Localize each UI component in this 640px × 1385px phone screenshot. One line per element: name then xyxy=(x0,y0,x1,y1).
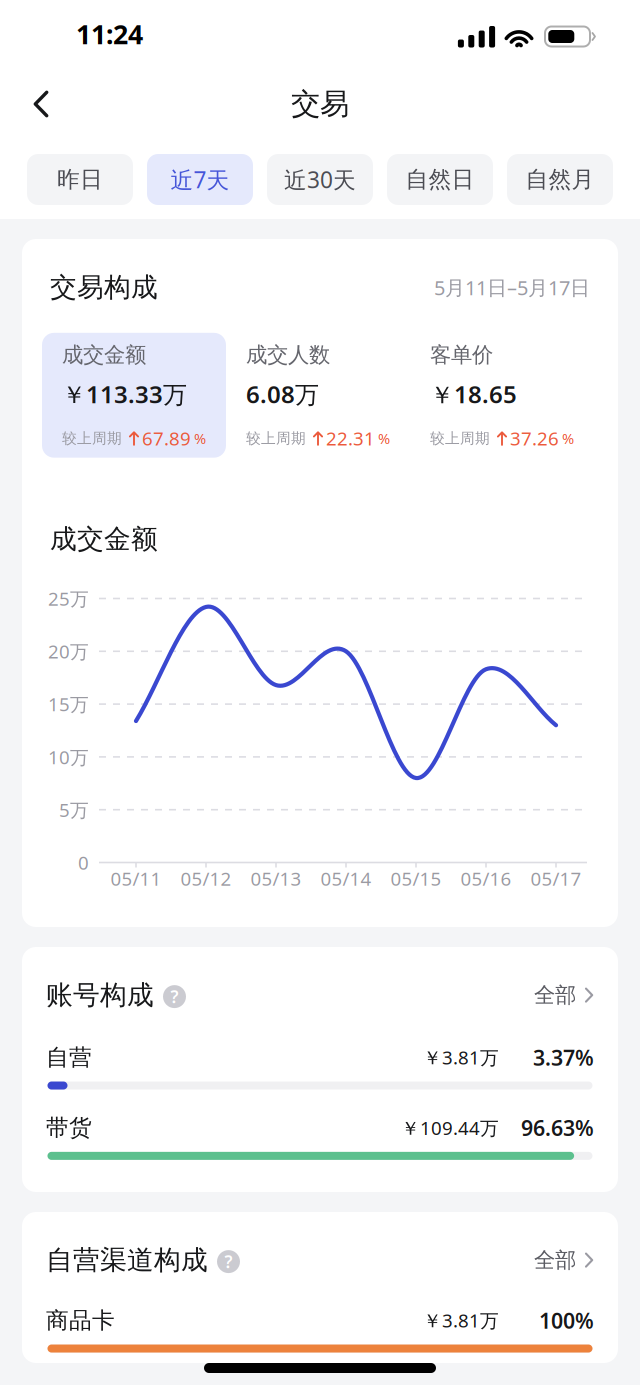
button[interactable]: 昨日 xyxy=(27,154,133,205)
button[interactable]: 返回 xyxy=(12,76,70,132)
staticText: ￥3.81万 xyxy=(423,1045,499,1070)
staticText: 20万 xyxy=(48,639,89,664)
button[interactable]: 全部 xyxy=(534,976,594,1014)
staticText: 自营渠道构成 xyxy=(46,1244,208,1276)
staticText: % xyxy=(562,429,574,448)
staticText: 05/13 xyxy=(250,866,301,891)
staticText: 近30天 xyxy=(284,164,356,194)
staticText: 37.26 xyxy=(510,426,559,451)
staticText: 交易 xyxy=(291,86,349,122)
button[interactable]: 近30天 xyxy=(267,154,373,205)
staticText: 05/14 xyxy=(320,866,371,891)
staticText: 05/12 xyxy=(180,866,231,891)
staticText: 67.89 xyxy=(142,426,191,451)
staticText: 自然日 xyxy=(405,166,474,193)
staticText: ￥18.65 xyxy=(430,378,517,410)
staticText: 10万 xyxy=(48,744,89,769)
staticText: 6.08万 xyxy=(246,378,319,410)
button[interactable]: 全部 xyxy=(534,1241,594,1279)
staticText: 5万 xyxy=(59,797,89,822)
staticText: 自然月 xyxy=(525,166,594,193)
staticText: 较上周期 xyxy=(246,429,306,447)
button[interactable]: 近7天 xyxy=(147,154,253,205)
staticText: ￥3.81万 xyxy=(423,1308,499,1333)
staticText: 较上周期 xyxy=(430,429,490,447)
staticText: % xyxy=(194,428,206,448)
staticText: 昨日 xyxy=(57,166,103,193)
staticText: ￥109.44万 xyxy=(401,1115,499,1140)
staticText: 成交金额 xyxy=(62,342,146,368)
staticText: 全部 xyxy=(534,1247,576,1273)
staticText: 账号构成 xyxy=(46,979,154,1011)
staticText: 22.31 xyxy=(326,426,375,451)
staticText: 05/17 xyxy=(530,866,581,891)
button[interactable]: 自然日 xyxy=(387,154,493,205)
staticText: 带货 xyxy=(46,1114,92,1142)
staticText: ? xyxy=(170,985,178,1008)
staticText: 成交人数 xyxy=(246,342,330,368)
staticText: 5月11日–5月17日 xyxy=(434,274,590,301)
staticText: 0 xyxy=(78,850,89,875)
staticText: % xyxy=(378,428,390,448)
staticText: 交易构成 xyxy=(50,271,158,304)
staticText: 05/15 xyxy=(390,866,441,891)
staticText: 25万 xyxy=(48,586,89,611)
staticText: 3.37% xyxy=(533,1043,594,1071)
staticText: 较上周期 xyxy=(62,429,122,447)
staticText: 05/11 xyxy=(110,866,161,891)
staticText: ? xyxy=(224,1250,232,1273)
staticText: 96.63% xyxy=(521,1113,594,1142)
staticText: 15万 xyxy=(48,692,89,716)
staticText: 客单价 xyxy=(430,342,493,368)
staticText: 05/16 xyxy=(460,866,511,891)
staticText: 商品卡 xyxy=(46,1306,115,1334)
staticText: 近7天 xyxy=(170,164,229,194)
staticText: 全部 xyxy=(534,982,576,1008)
staticText: 自营 xyxy=(46,1043,92,1071)
button[interactable]: 自然月 xyxy=(507,154,613,205)
staticText: 成交金额 xyxy=(50,523,158,555)
staticText: 11:24 xyxy=(76,16,143,52)
staticText: ￥113.33万 xyxy=(62,378,187,410)
staticText: 100% xyxy=(539,1306,594,1334)
